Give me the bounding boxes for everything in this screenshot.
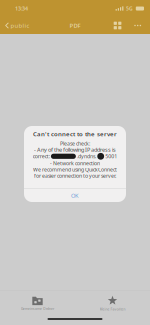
button[interactable]: Grid view <box>110 18 125 33</box>
button[interactable]: Meine Favoriten <box>75 296 150 311</box>
staticText: correct: <box>33 153 50 160</box>
staticText: public <box>11 21 30 29</box>
staticText: PDF <box>69 21 80 29</box>
button[interactable]: More options <box>131 19 144 32</box>
staticText: 5G <box>126 5 133 12</box>
staticText: - Network connection <box>50 160 100 167</box>
staticText: 13:34 <box>15 5 28 12</box>
staticText: 5001 <box>105 153 117 160</box>
staticText: - Any of the following IP address is <box>34 146 116 153</box>
staticText: Meine Favoriten <box>99 307 125 311</box>
button[interactable]: OK <box>24 189 126 202</box>
staticText: Can't connect to the server <box>33 130 117 138</box>
staticText: Please check: <box>60 140 90 147</box>
button[interactable]: Gemeinsame Ordner <box>0 296 75 311</box>
staticText: Gemeinsame Ordner <box>21 306 54 311</box>
staticText: .dyndns. <box>77 153 96 160</box>
staticText: We recommend using QuickConnect <box>33 166 117 173</box>
staticText: OK <box>71 192 79 199</box>
staticText: for easier connection to your server. <box>34 172 116 179</box>
button[interactable]: public <box>2 18 33 32</box>
